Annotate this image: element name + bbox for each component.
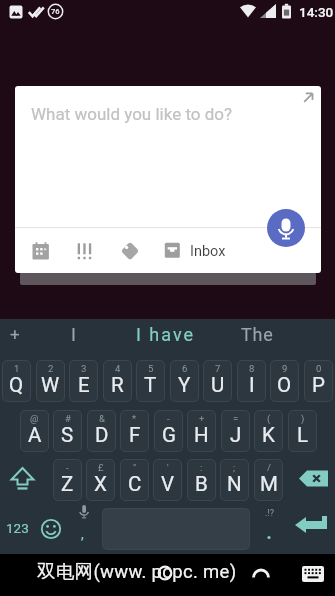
staticText: L	[297, 423, 309, 447]
button[interactable]: '	[153, 459, 182, 501]
staticText: +	[199, 413, 205, 424]
staticText: 2	[48, 363, 54, 374]
staticText: 5	[148, 363, 154, 374]
button[interactable]: )	[288, 410, 317, 452]
button[interactable]: 1	[2, 360, 31, 402]
button[interactable]: "	[120, 459, 149, 501]
staticText: 1	[14, 363, 20, 374]
staticText: U	[211, 373, 225, 397]
staticText: *	[132, 413, 137, 424]
staticText: -	[167, 413, 170, 424]
button[interactable]: :	[187, 459, 216, 501]
staticText: W	[41, 373, 60, 397]
staticText: -	[66, 462, 69, 473]
button[interactable]: 123	[2, 518, 32, 538]
button[interactable]: 5	[136, 360, 165, 402]
button[interactable]: +	[4, 322, 26, 346]
button[interactable]: 9	[270, 360, 299, 402]
button[interactable]: I	[60, 322, 86, 346]
staticText: 8	[249, 363, 255, 374]
staticText: Inbox	[190, 243, 226, 260]
button[interactable]	[267, 209, 305, 247]
button[interactable]	[74, 240, 95, 261]
button[interactable]: ;	[220, 459, 249, 501]
staticText: I	[249, 373, 255, 397]
button[interactable]: .!?	[256, 505, 282, 549]
button[interactable]: +	[187, 410, 216, 452]
button[interactable]: =	[221, 410, 250, 452]
button[interactable]: 8	[237, 360, 266, 402]
staticText: X	[94, 472, 107, 496]
button[interactable]: 2	[36, 360, 65, 402]
staticText: D	[95, 423, 109, 447]
button[interactable]	[292, 512, 332, 542]
button[interactable]: @	[20, 410, 49, 452]
button[interactable]	[40, 518, 62, 540]
staticText: F	[129, 423, 141, 447]
staticText: Q	[9, 373, 24, 397]
staticText: #	[65, 413, 71, 424]
staticText: S	[61, 423, 74, 447]
staticText: 3	[81, 363, 87, 374]
staticText: What would you like to do?	[31, 104, 233, 124]
button[interactable]: 7	[203, 360, 232, 402]
staticText: 9	[282, 363, 288, 374]
button[interactable]: 3	[69, 360, 98, 402]
staticText: 6	[182, 363, 188, 374]
staticText: .!?	[265, 508, 274, 519]
staticText: :	[200, 462, 203, 473]
staticText: 双电网(www. pcpc. me)	[37, 560, 237, 583]
button[interactable]: 6	[170, 360, 199, 402]
staticText: 123	[6, 520, 29, 536]
staticText: £	[98, 462, 104, 473]
button[interactable]: £	[86, 459, 115, 501]
button[interactable]	[297, 86, 321, 110]
staticText: Y	[178, 373, 191, 397]
button[interactable]: #	[53, 410, 82, 452]
staticText: )	[301, 413, 305, 424]
staticText: V	[161, 472, 175, 496]
staticText: I	[71, 324, 76, 345]
staticText: A	[28, 423, 42, 447]
button[interactable]: 4	[103, 360, 132, 402]
staticText: =	[233, 413, 239, 424]
staticText: 7	[215, 363, 221, 374]
staticText: &	[99, 413, 105, 424]
button[interactable]: ,	[75, 503, 93, 549]
staticText: I have	[136, 324, 196, 345]
staticText: '	[167, 462, 169, 473]
button[interactable]: /	[254, 459, 283, 501]
button[interactable]: I have	[134, 322, 198, 346]
button[interactable]: Inbox	[164, 241, 244, 261]
staticText: 76	[51, 7, 60, 16]
staticText: @	[30, 413, 39, 424]
button[interactable]: 0	[304, 360, 333, 402]
button[interactable]: -	[53, 459, 82, 501]
staticText: ,	[81, 526, 84, 542]
staticText: +	[10, 324, 20, 344]
staticText: G	[162, 423, 176, 447]
staticText: The	[241, 324, 274, 345]
button[interactable]	[6, 462, 40, 496]
button[interactable]: *	[120, 410, 149, 452]
button[interactable]: The	[240, 322, 274, 346]
button[interactable]	[294, 465, 332, 493]
button[interactable]	[29, 240, 50, 261]
staticText: E	[78, 373, 90, 397]
button[interactable]: &	[87, 410, 116, 452]
staticText: B	[195, 472, 208, 496]
button[interactable]	[119, 240, 141, 262]
staticText: T	[144, 373, 157, 397]
staticText: M	[260, 472, 278, 496]
button[interactable]: -	[154, 410, 183, 452]
staticText: K	[262, 423, 275, 447]
staticText: J	[230, 423, 242, 447]
staticText: C	[128, 472, 142, 496]
staticText: 0	[316, 363, 322, 374]
staticText: "	[133, 462, 137, 473]
staticText: N	[227, 472, 242, 496]
button[interactable]: (	[254, 410, 283, 452]
staticText: H	[194, 423, 209, 447]
staticText: 14:30	[299, 4, 334, 20]
